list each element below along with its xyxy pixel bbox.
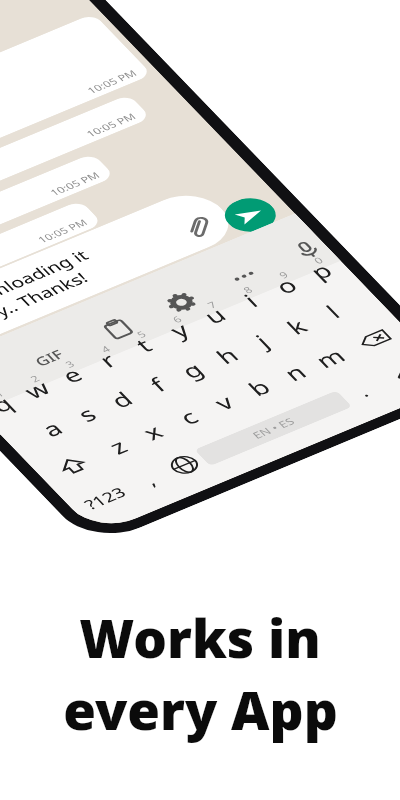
button[interactable]: w — [4, 366, 71, 413]
staticText: t — [129, 332, 158, 358]
staticText: m — [308, 342, 352, 374]
button[interactable]: q — [0, 381, 35, 428]
staticText: d — [103, 385, 140, 414]
button[interactable]: i — [216, 277, 283, 324]
button[interactable]: z — [84, 423, 151, 470]
staticText: c — [172, 404, 205, 430]
staticText: 5 — [133, 328, 149, 340]
staticText: o — [268, 271, 304, 299]
button[interactable]: Change language — [150, 441, 217, 489]
staticText: 6 — [169, 313, 184, 325]
staticText: s — [70, 401, 103, 427]
staticText: , — [138, 470, 161, 490]
button[interactable]: n — [261, 349, 328, 396]
button[interactable]: h — [194, 332, 260, 379]
button[interactable]: j — [229, 317, 295, 364]
staticText: . — [351, 381, 373, 401]
button[interactable]: l — [300, 288, 366, 335]
button[interactable]: ?123 — [62, 471, 147, 526]
staticText: r — [92, 347, 124, 373]
staticText: 10:05 PM — [47, 169, 102, 198]
staticText: f — [143, 372, 173, 397]
staticText: q — [0, 390, 20, 418]
button[interactable]: Shift — [30, 438, 115, 493]
staticText: b — [241, 373, 277, 401]
staticText: x — [135, 418, 170, 446]
staticText: GIF — [30, 346, 68, 370]
button[interactable]: Attach — [176, 214, 217, 241]
button[interactable]: Backspace — [332, 312, 400, 367]
staticText: v — [207, 389, 241, 416]
button[interactable]: GIF — [22, 341, 76, 374]
staticText: k — [280, 313, 314, 340]
button[interactable]: Send — [215, 192, 285, 238]
staticText: y — [162, 317, 196, 344]
button[interactable]: p — [287, 247, 354, 295]
button[interactable]: m — [297, 334, 364, 381]
button[interactable]: I'm downloading it — [0, 185, 244, 360]
staticText: a — [34, 415, 70, 442]
staticText: I'm downloading it — [0, 246, 93, 327]
staticText: l — [319, 299, 346, 324]
button[interactable]: c — [154, 393, 221, 441]
button[interactable]: , — [116, 456, 183, 503]
staticText: j — [248, 329, 276, 353]
staticText: 7 — [204, 298, 219, 310]
button[interactable]: . — [328, 367, 395, 414]
staticText: 10:05 PM — [83, 110, 138, 139]
button[interactable]: k — [264, 303, 330, 350]
staticText: every App — [63, 673, 338, 745]
staticText: 8 — [240, 284, 255, 296]
staticText: 0 — [311, 254, 326, 266]
staticText: u — [196, 301, 233, 329]
staticText: n — [277, 358, 313, 387]
staticText: Works in — [79, 601, 321, 673]
staticText: g — [174, 356, 210, 384]
staticText: z — [101, 433, 134, 460]
staticText: 4 — [98, 343, 113, 355]
button[interactable]: Clipboard — [97, 315, 138, 342]
button[interactable]: Voice input — [287, 236, 328, 263]
button[interactable]: s — [54, 391, 120, 437]
button[interactable]: x — [119, 408, 186, 456]
staticText: already.. Thanks! — [0, 268, 93, 343]
button[interactable]: v — [190, 379, 257, 426]
staticText: w — [17, 374, 57, 404]
staticText: 3 — [62, 358, 77, 370]
staticText: ?123 — [79, 483, 131, 514]
staticText: 10:05 PM — [34, 216, 90, 245]
button[interactable]: b — [225, 364, 292, 411]
button[interactable]: o — [252, 262, 319, 309]
button[interactable]: Settings — [161, 289, 202, 316]
staticText: 10:05 PM — [84, 67, 139, 96]
staticText: EN • ES — [249, 414, 299, 441]
staticText: 9 — [276, 269, 291, 281]
button[interactable]: f — [124, 361, 190, 408]
button[interactable]: y — [146, 306, 213, 354]
button[interactable]: g — [159, 347, 225, 393]
button[interactable]: a — [19, 405, 85, 452]
button[interactable]: d — [88, 376, 155, 423]
staticText: i — [237, 288, 264, 313]
button[interactable]: t — [110, 321, 177, 369]
staticText: h — [209, 341, 245, 370]
button[interactable]: Enter — [363, 345, 400, 400]
button[interactable]: Space — [194, 390, 352, 466]
staticText: e — [54, 361, 90, 389]
staticText: 1 — [0, 387, 6, 399]
button[interactable]: More options — [224, 263, 264, 290]
staticText: p — [303, 257, 339, 285]
button[interactable]: u — [181, 292, 248, 339]
button[interactable]: r — [74, 336, 141, 384]
staticText: 2 — [27, 372, 42, 384]
button[interactable]: e — [38, 351, 105, 398]
